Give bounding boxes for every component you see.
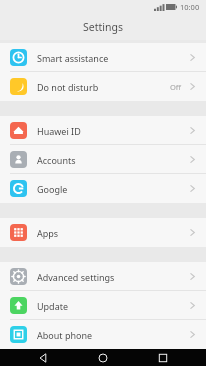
staticText: Settings <box>83 20 123 34</box>
staticText: Huawei ID <box>37 125 81 137</box>
button[interactable]: Recent apps <box>146 349 180 366</box>
button[interactable]: Apps <box>0 218 206 247</box>
staticText: Google <box>37 183 68 195</box>
staticText: Accounts <box>37 154 76 166</box>
staticText: Smart assistance <box>37 52 109 64</box>
button[interactable]: Back <box>26 349 60 366</box>
staticText: Off <box>170 82 182 92</box>
staticText: About phone <box>37 329 93 341</box>
staticText: Advanced settings <box>37 271 115 283</box>
button[interactable]: Huawei ID <box>0 116 206 145</box>
button[interactable]: Advanced settings <box>0 262 206 291</box>
button[interactable]: About phone <box>0 320 206 349</box>
staticText: 10:00 <box>180 2 200 12</box>
button[interactable]: Update <box>0 291 206 320</box>
button[interactable]: Accounts <box>0 145 206 174</box>
button[interactable]: Do not disturb <box>0 72 206 101</box>
button[interactable]: Google <box>0 174 206 203</box>
staticText: Update <box>37 300 69 312</box>
staticText: Apps <box>37 227 59 239</box>
staticText: Do not disturb <box>37 81 99 93</box>
button[interactable]: Smart assistance <box>0 43 206 72</box>
button[interactable]: Home <box>86 349 120 366</box>
